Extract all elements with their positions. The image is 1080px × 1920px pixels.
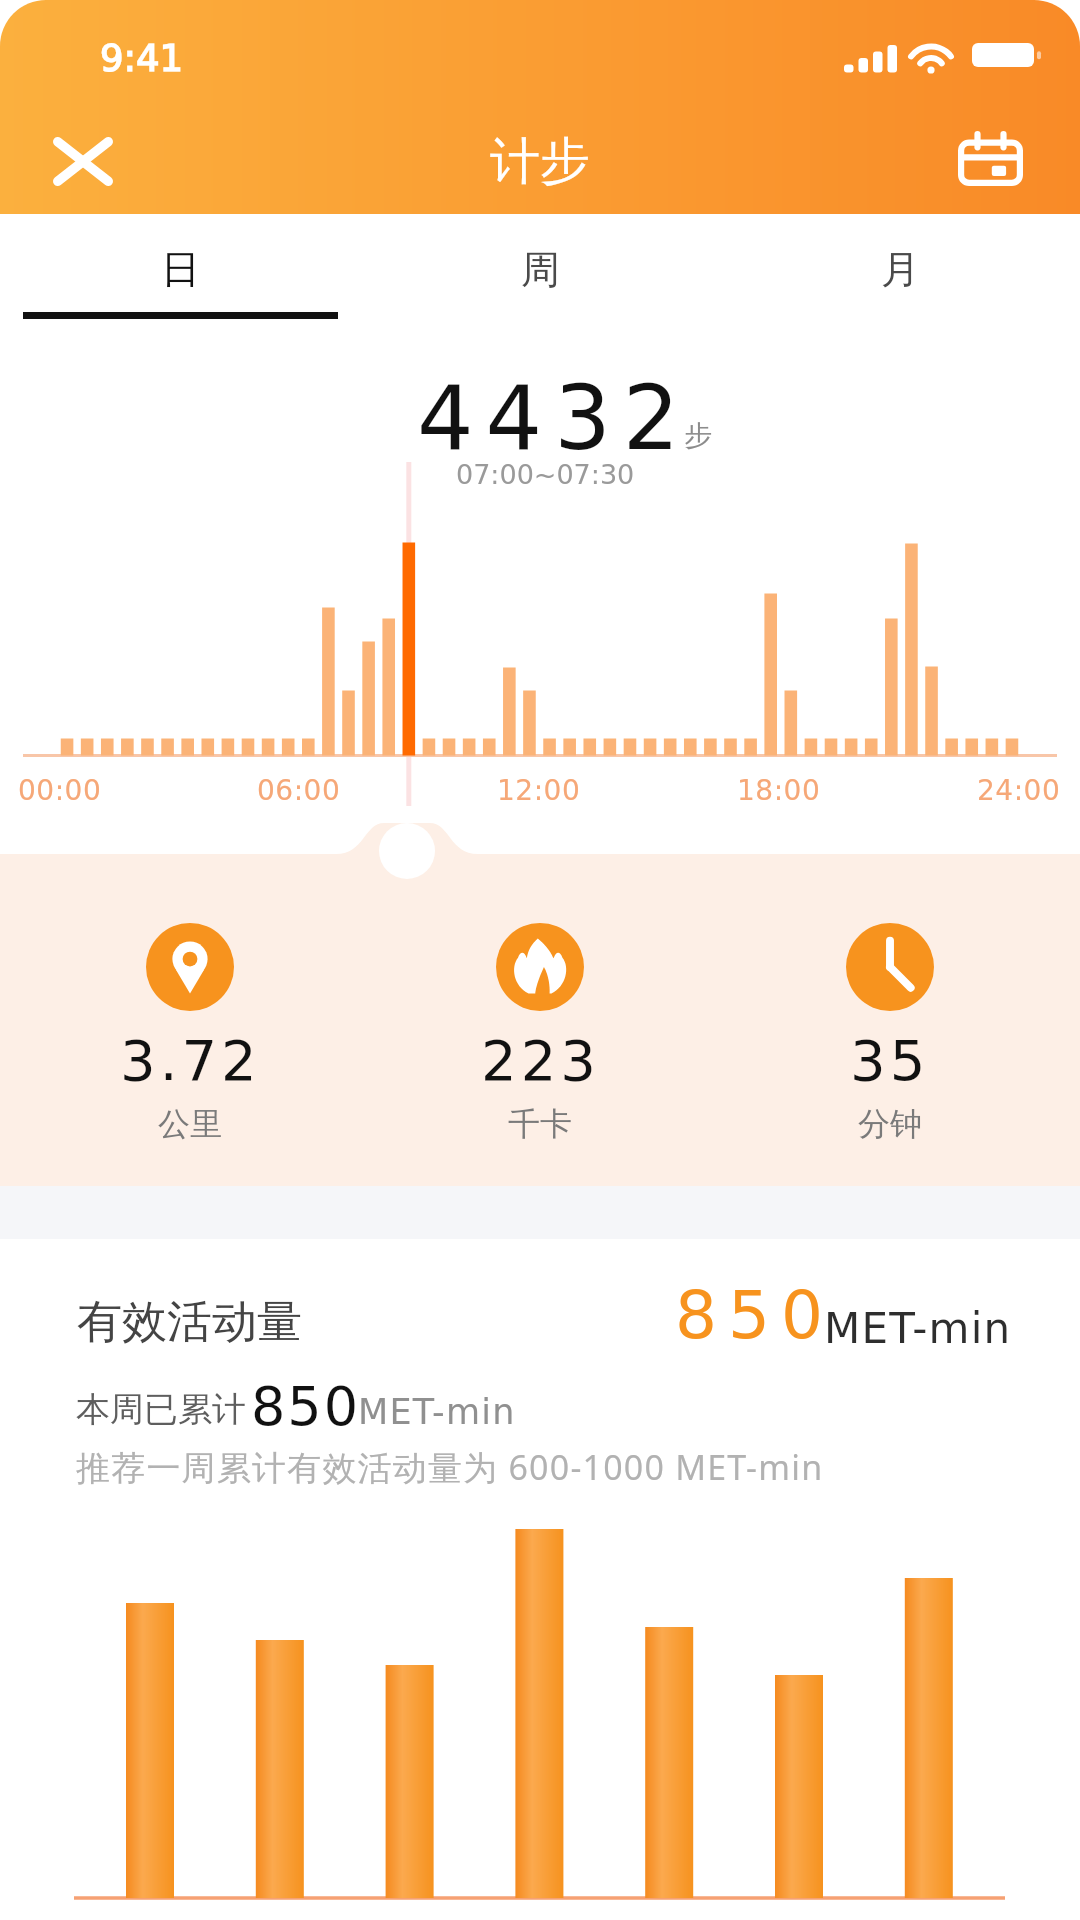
staticText: 周: [521, 245, 560, 294]
button[interactable]: Close: [29, 107, 137, 214]
staticText: 00:00: [18, 774, 102, 807]
staticText: 35: [850, 1028, 930, 1093]
staticText: 计步: [490, 130, 590, 193]
staticText: 公里: [158, 1104, 222, 1144]
staticText: MET-min: [824, 1304, 1012, 1353]
staticText: 步: [684, 418, 712, 453]
button[interactable]: 35: [715, 923, 1065, 1144]
staticText: 12:00: [497, 774, 581, 807]
staticText: 850: [251, 1375, 361, 1438]
staticText: 07:00~07:30: [456, 459, 635, 490]
button[interactable]: 周: [360, 214, 720, 324]
staticText: 有效活动量: [77, 1294, 302, 1351]
staticText: 223: [481, 1028, 600, 1093]
button[interactable]: 月: [720, 214, 1080, 324]
staticText: 推荐一周累计有效活动量为 600-1000 MET-min: [76, 1444, 824, 1490]
staticText: 18:00: [737, 774, 821, 807]
button[interactable]: 223: [365, 923, 715, 1144]
staticText: 24:00: [977, 774, 1061, 807]
button[interactable]: Calendar: [936, 105, 1044, 213]
button[interactable]: 日: [0, 214, 360, 324]
staticText: 本周已累计: [76, 1388, 246, 1431]
staticText: 06:00: [257, 774, 341, 807]
staticText: 3.72: [120, 1028, 261, 1093]
staticText: 月: [881, 245, 920, 294]
staticText: 分钟: [858, 1104, 922, 1144]
button[interactable]: 3.72: [15, 923, 365, 1144]
staticText: 9:41: [100, 37, 184, 80]
staticText: MET-min: [358, 1392, 516, 1433]
staticText: 千卡: [508, 1104, 572, 1144]
staticText: 850: [675, 1277, 834, 1354]
staticText: 日: [161, 245, 200, 294]
staticText: 4432: [417, 366, 692, 470]
